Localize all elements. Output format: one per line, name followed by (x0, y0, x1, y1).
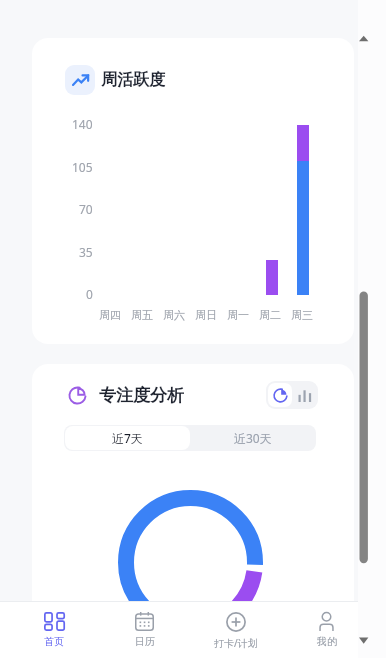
staticText: 周六 (163, 308, 185, 322)
button[interactable]: 近30天 (190, 426, 315, 450)
staticText: 周二 (259, 308, 281, 322)
staticText: 我的 (317, 635, 337, 648)
staticText: 35 (79, 244, 93, 258)
staticText: 105 (72, 159, 93, 173)
staticText: 首页 (44, 635, 64, 648)
staticText: 周一 (227, 308, 249, 322)
button[interactable]: 打卡/计划 (190, 612, 281, 658)
staticText: 打卡/计划 (214, 636, 258, 650)
staticText: 140 (72, 116, 93, 130)
staticText: 周活跃度 (101, 70, 165, 90)
button[interactable]: Bar chart view (292, 383, 316, 407)
button[interactable]: 近7天 (65, 426, 190, 450)
button[interactable]: 首页 (8, 612, 99, 658)
button[interactable]: 日历 (99, 612, 190, 658)
staticText: 70 (79, 201, 93, 215)
staticText: 周四 (99, 308, 121, 322)
staticText: 近30天 (234, 430, 272, 446)
staticText: 周日 (195, 308, 217, 322)
staticText: 周三 (291, 308, 313, 322)
staticText: 周五 (131, 308, 153, 322)
staticText: 0 (86, 286, 93, 300)
staticText: 近7天 (112, 430, 143, 446)
button[interactable]: 我的 (281, 612, 372, 658)
staticText: 专注度分析 (99, 385, 184, 406)
staticText: 日历 (135, 635, 155, 648)
button[interactable]: Pie chart view (268, 383, 292, 407)
